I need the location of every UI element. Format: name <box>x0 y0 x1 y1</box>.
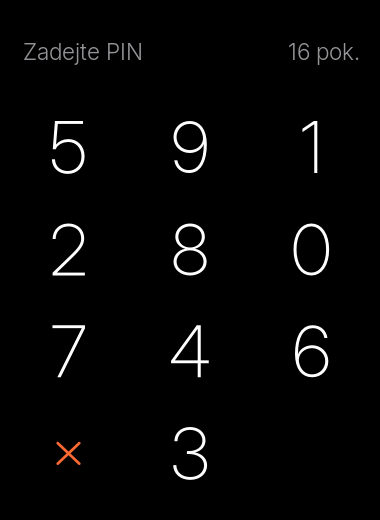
button[interactable]: 8 <box>131 200 249 300</box>
button[interactable]: 5 <box>9 97 127 197</box>
button[interactable]: 6 <box>252 302 370 402</box>
button[interactable]: 7 <box>9 302 127 402</box>
button[interactable]: Delete <box>9 403 127 503</box>
staticText: 6 <box>292 309 330 394</box>
staticText: 7 <box>50 309 86 394</box>
button[interactable]: 0 <box>252 200 370 300</box>
staticText: 8 <box>171 207 209 292</box>
staticText: Zadejte PIN <box>23 38 143 65</box>
button[interactable]: 3 <box>131 403 249 503</box>
button[interactable]: 9 <box>131 97 249 197</box>
staticText: 9 <box>171 105 209 190</box>
staticText: 4 <box>169 309 211 394</box>
staticText: 5 <box>49 105 87 190</box>
button[interactable]: 2 <box>9 200 127 300</box>
staticText: 2 <box>49 207 87 292</box>
staticText: 16 pok. <box>288 38 360 65</box>
staticText: 0 <box>291 207 332 292</box>
staticText: 1 <box>300 105 323 190</box>
staticText: 3 <box>170 411 209 496</box>
button[interactable]: 1 <box>252 97 370 197</box>
button[interactable]: 4 <box>131 302 249 402</box>
